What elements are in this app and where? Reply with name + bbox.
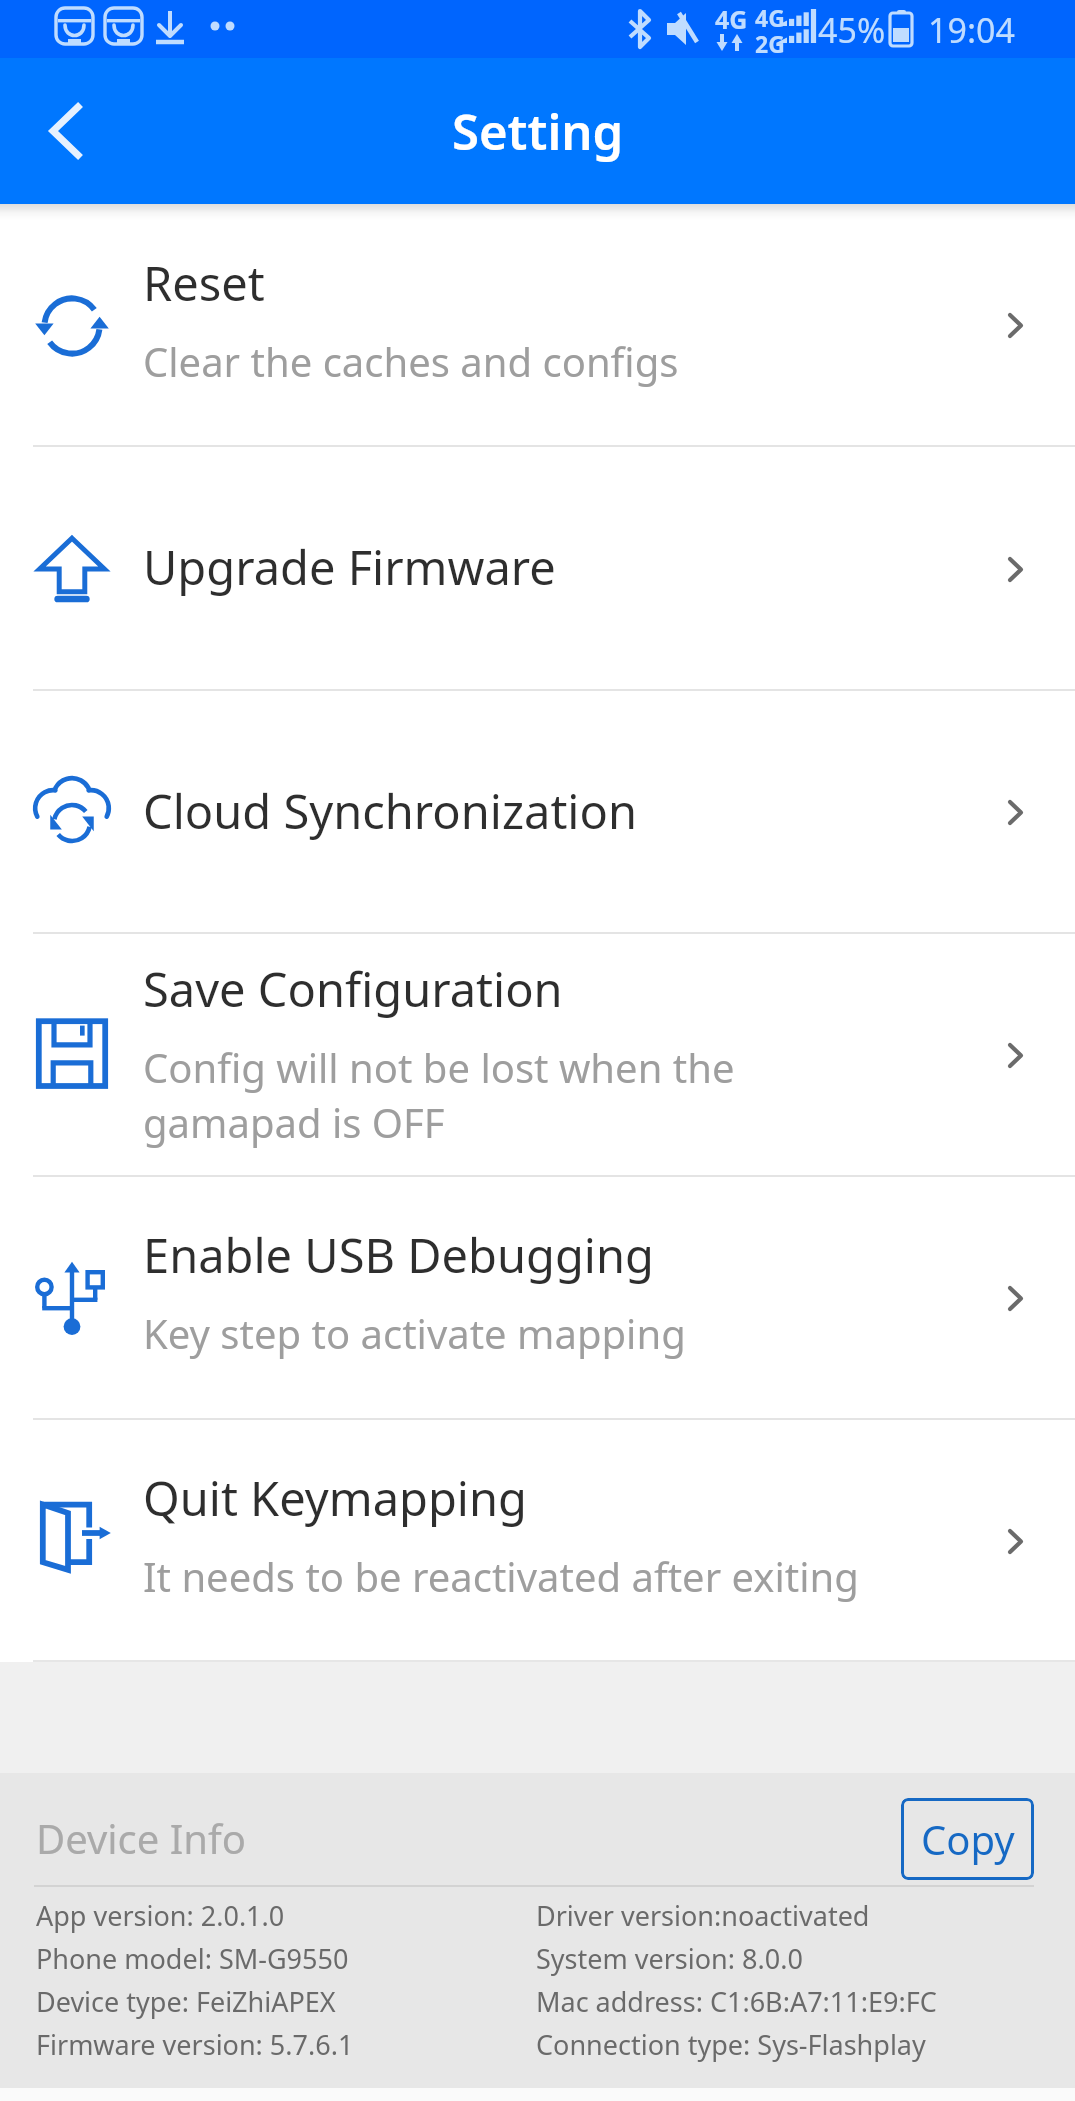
staticText: It needs to be reactivated after exiting (143, 1549, 859, 1603)
button[interactable]: Upgrade Firmware (0, 447, 1075, 691)
staticText: Firmware version: 5.7.6.1 (36, 2026, 354, 2063)
staticText: Config will not be lost when the gamapad… (143, 1040, 883, 1150)
button[interactable]: Save Configuration (0, 934, 1075, 1177)
staticText: 4G (715, 2, 748, 36)
staticText: Clear the caches and configs (143, 334, 679, 388)
staticText: Copy (921, 1812, 1015, 1866)
staticText: System version: 8.0.0 (536, 1940, 803, 1977)
button[interactable]: Cloud Synchronization (0, 691, 1075, 934)
staticText: Driver version:noactivated (536, 1897, 870, 1934)
staticText: Connection type: Sys-Flashplay (536, 2026, 926, 2063)
staticText: App version: 2.0.1.0 (36, 1897, 285, 1934)
staticText: Device Info (36, 1811, 246, 1865)
staticText: Key step to activate mapping (143, 1306, 686, 1360)
staticText: Setting (452, 98, 624, 165)
staticText: Phone model: SM-G9550 (36, 1940, 349, 1977)
button[interactable]: Enable USB Debugging (0, 1177, 1075, 1420)
staticText: Mac address: C1:6B:A7:11:E9:FC (536, 1983, 937, 2020)
staticText: Reset (143, 251, 265, 315)
staticText: Cloud Synchronization (143, 779, 637, 843)
staticText: 19:04 (928, 7, 1015, 53)
staticText: 4G (755, 2, 785, 33)
button[interactable]: Quit Keymapping (0, 1420, 1075, 1662)
staticText: Enable USB Debugging (143, 1223, 654, 1287)
staticText: Quit Keymapping (143, 1466, 527, 1530)
staticText: Upgrade Firmware (143, 535, 556, 599)
staticText: 2G (755, 28, 785, 59)
staticText: 45% (818, 7, 886, 53)
staticText: Device type: FeiZhiAPEX (36, 1983, 336, 2020)
staticText: Save Configuration (143, 957, 563, 1021)
button[interactable]: Reset (0, 204, 1075, 447)
button[interactable]: Copy (901, 1798, 1034, 1880)
button[interactable]: Back (0, 58, 130, 204)
